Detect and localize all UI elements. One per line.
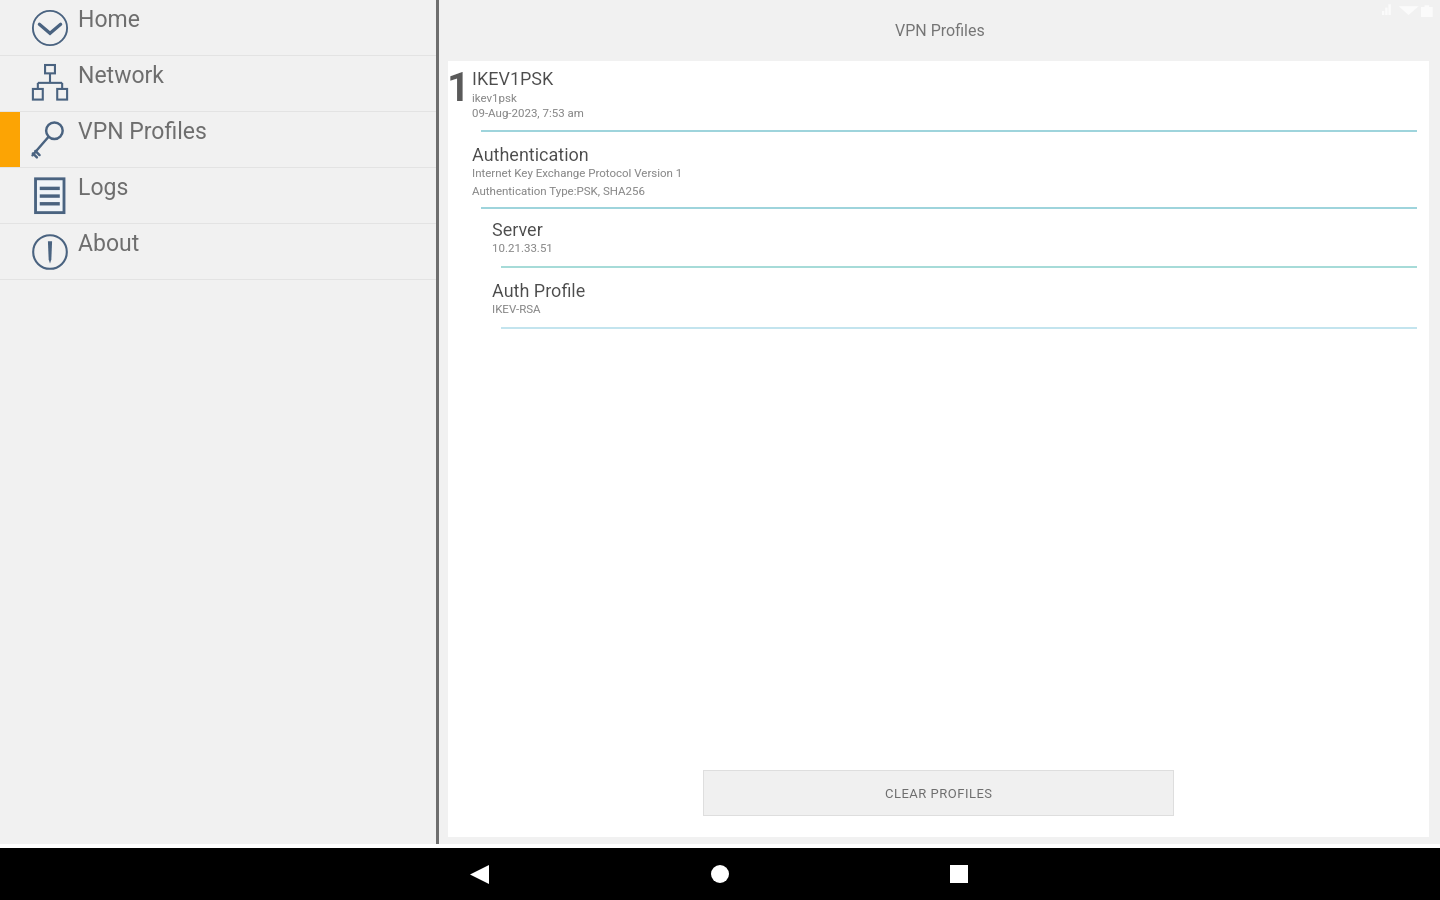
staticText: 1: [447, 64, 470, 111]
staticText: IKEV1PSK: [472, 68, 554, 89]
button[interactable]: About: [0, 224, 436, 279]
button[interactable]: Recent apps: [935, 850, 983, 898]
button[interactable]: Auth Profile: [448, 280, 1429, 315]
staticText: Server: [492, 219, 543, 240]
button[interactable]: Network: [0, 56, 436, 111]
staticText: Auth Profile: [492, 280, 586, 301]
button[interactable]: CLEAR PROFILES: [704, 771, 1173, 815]
staticText: VPN Profiles: [78, 118, 207, 145]
button[interactable]: Back: [455, 850, 503, 898]
staticText: About: [78, 230, 140, 257]
button[interactable]: Logs: [0, 168, 436, 223]
staticText: 10.21.33.51: [492, 241, 553, 254]
button[interactable]: Home: [0, 0, 436, 55]
staticText: VPN Profiles: [895, 21, 985, 40]
button[interactable]: Server: [448, 219, 1429, 254]
staticText: Authentication: [472, 144, 589, 165]
staticText: CLEAR PROFILES: [885, 786, 993, 801]
button[interactable]: 1: [448, 68, 1429, 120]
button[interactable]: Home: [696, 850, 744, 898]
staticText: Logs: [78, 174, 129, 201]
staticText: IKEV-RSA: [492, 302, 541, 315]
button[interactable]: Authentication: [448, 144, 1429, 197]
staticText: 09-Aug-2023, 7:53 am: [472, 106, 584, 119]
button[interactable]: VPN Profiles: [0, 112, 436, 167]
staticText: Home: [78, 6, 140, 33]
staticText: Internet Key Exchange Protocol Version 1: [472, 166, 683, 179]
staticText: Authentication Type:PSK, SHA256: [472, 184, 645, 197]
staticText: Network: [78, 62, 164, 89]
staticText: ikev1psk: [472, 91, 517, 104]
